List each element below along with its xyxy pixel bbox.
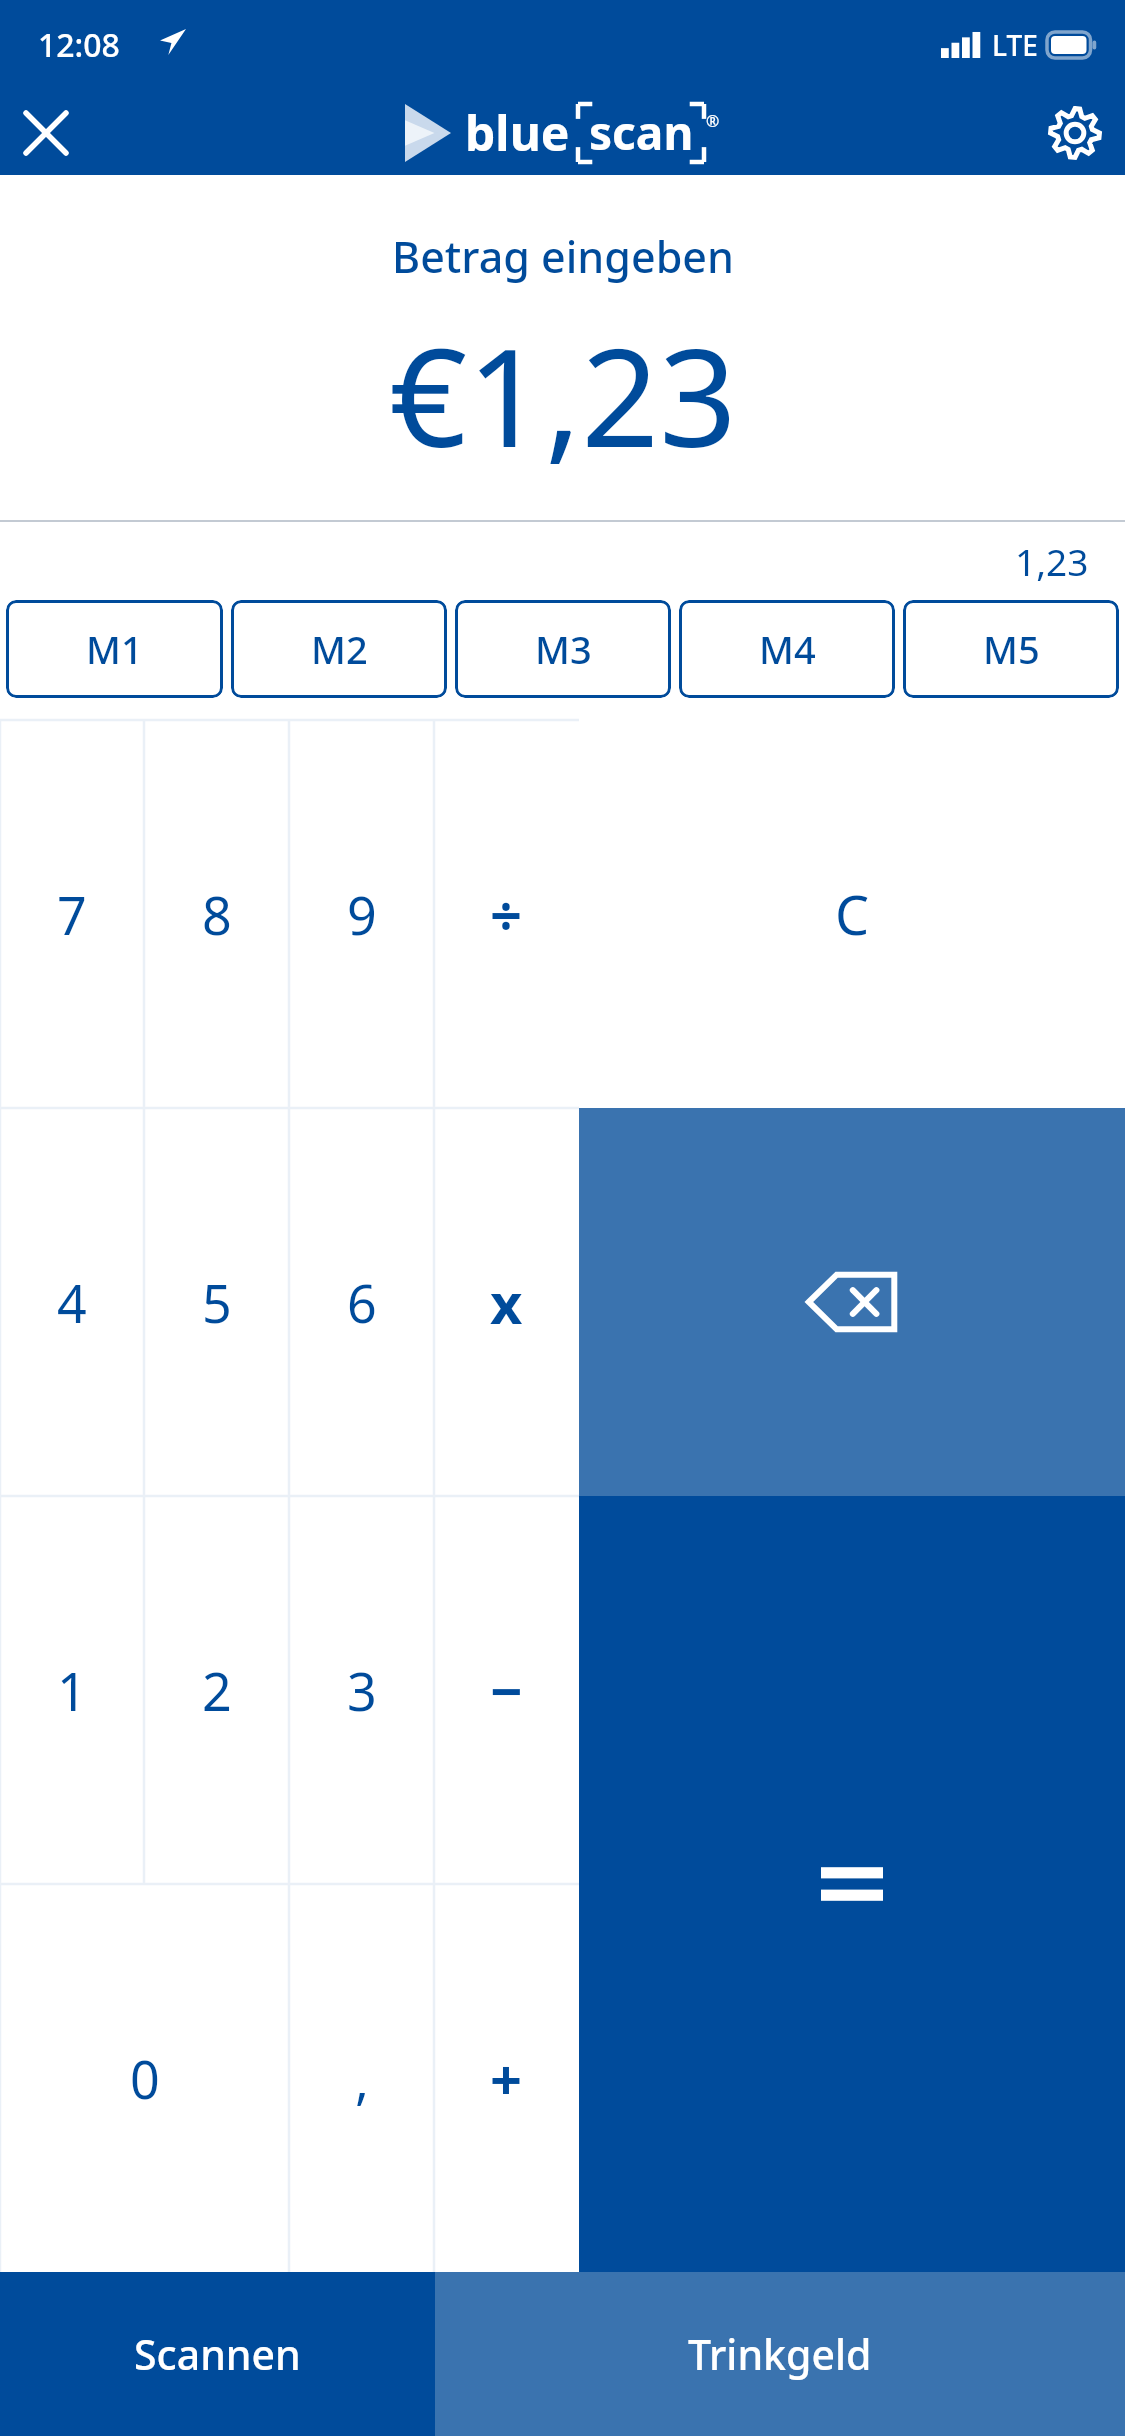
staticText: 8 <box>202 879 232 950</box>
staticText: 1 <box>57 1655 87 1726</box>
staticText: 2 <box>202 1655 232 1726</box>
button[interactable]: Equals <box>579 1496 1125 2272</box>
staticText: M1 <box>86 623 143 675</box>
button[interactable]: 6 <box>289 1108 434 1496</box>
staticText: €1,23 <box>389 302 737 487</box>
button[interactable]: 5 <box>144 1108 289 1496</box>
button[interactable]: 4 <box>0 1108 144 1496</box>
button[interactable]: M1 <box>6 600 223 698</box>
staticText: 4 <box>57 1267 87 1338</box>
button[interactable]: , <box>289 1884 434 2272</box>
button[interactable]: Backspace <box>579 1108 1125 1496</box>
button[interactable]: Settings <box>1035 93 1115 173</box>
staticText: 9 <box>347 879 377 950</box>
staticText: ® <box>706 110 720 132</box>
button[interactable]: Trinkgeld <box>435 2272 1125 2436</box>
button[interactable]: M3 <box>455 600 671 698</box>
button[interactable]: 7 <box>0 720 144 1108</box>
button[interactable]: x <box>434 1108 579 1496</box>
staticText: 12:08 <box>38 23 120 67</box>
button[interactable]: 8 <box>144 720 289 1108</box>
button[interactable]: M5 <box>903 600 1119 698</box>
button[interactable]: 3 <box>289 1496 434 1884</box>
button[interactable]: 2 <box>144 1496 289 1884</box>
staticText: C <box>835 877 870 951</box>
staticText: + <box>490 2040 523 2116</box>
staticText: Betrag eingeben <box>392 227 734 286</box>
button[interactable]: 0 <box>0 1884 289 2272</box>
staticText: Trinkgeld <box>688 2326 872 2382</box>
staticText: M3 <box>535 623 592 675</box>
button[interactable]: 1 <box>0 1496 144 1884</box>
staticText: M2 <box>311 623 368 675</box>
staticText: ÷ <box>490 876 523 952</box>
staticText: − <box>490 1652 523 1728</box>
button[interactable]: + <box>434 1884 579 2272</box>
button[interactable]: ÷ <box>434 720 579 1108</box>
button[interactable]: M4 <box>679 600 895 698</box>
button[interactable]: Close <box>6 93 86 173</box>
staticText: M5 <box>983 623 1040 675</box>
button[interactable]: 9 <box>289 720 434 1108</box>
staticText: 7 <box>57 879 87 950</box>
button[interactable]: − <box>434 1496 579 1884</box>
staticText: 5 <box>202 1267 232 1338</box>
button[interactable]: Scannen <box>0 2272 435 2436</box>
staticText: 3 <box>347 1655 377 1726</box>
staticText: LTE <box>992 26 1038 64</box>
staticText: 6 <box>347 1267 377 1338</box>
button[interactable]: M2 <box>231 600 447 698</box>
staticText: M4 <box>759 623 816 675</box>
staticText: x <box>490 1264 523 1340</box>
button[interactable]: C <box>579 720 1125 1108</box>
staticText: blue <box>465 100 570 165</box>
staticText: scan <box>589 101 694 164</box>
staticText: 1,23 <box>1015 536 1089 586</box>
staticText: 0 <box>130 2043 160 2114</box>
staticText: Scannen <box>134 2326 301 2382</box>
staticText: , <box>355 2043 369 2114</box>
